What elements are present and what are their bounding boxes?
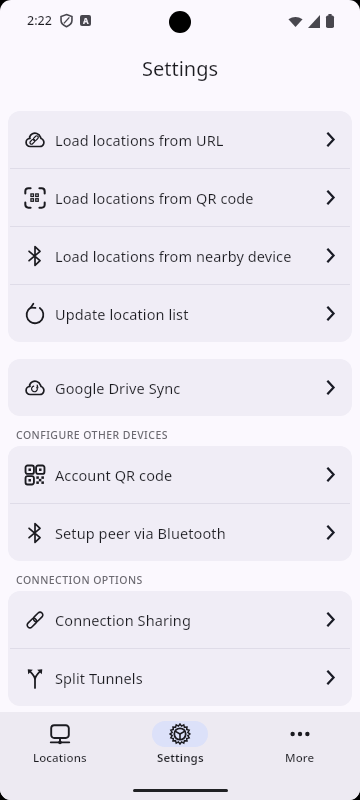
- button[interactable]: Locations: [0, 712, 120, 800]
- staticText: 2:22: [27, 12, 52, 29]
- staticText: Locations: [33, 750, 87, 766]
- button[interactable]: Google Drive Sync: [8, 359, 352, 416]
- button[interactable]: Load locations from nearby device: [8, 227, 352, 284]
- staticText: Google Drive Sync: [55, 378, 181, 398]
- staticText: Account QR code: [55, 465, 173, 485]
- button[interactable]: Connection Sharing: [8, 591, 352, 648]
- staticText: Update location list: [55, 304, 189, 324]
- staticText: Settings: [142, 55, 219, 82]
- staticText: Load locations from URL: [55, 130, 224, 150]
- staticText: Settings: [157, 750, 204, 766]
- staticText: CONNECTION OPTIONS: [16, 573, 143, 587]
- staticText: Load locations from nearby device: [55, 246, 292, 266]
- button[interactable]: Split Tunnels: [8, 649, 352, 706]
- staticText: A: [83, 15, 89, 26]
- staticText: Split Tunnels: [55, 668, 143, 688]
- staticText: Connection Sharing: [55, 610, 191, 630]
- button[interactable]: Setup peer via Bluetooth: [8, 504, 352, 561]
- button[interactable]: Load locations from QR code: [8, 169, 352, 226]
- staticText: More: [285, 750, 315, 766]
- button[interactable]: Load locations from URL: [8, 111, 352, 168]
- staticText: Setup peer via Bluetooth: [55, 523, 226, 543]
- staticText: CONFIGURE OTHER DEVICES: [16, 428, 168, 442]
- button[interactable]: More: [240, 712, 360, 800]
- button[interactable]: Account QR code: [8, 446, 352, 503]
- staticText: Load locations from QR code: [55, 188, 254, 208]
- button[interactable]: Update location list: [8, 285, 352, 342]
- button[interactable]: Settings: [120, 712, 240, 800]
